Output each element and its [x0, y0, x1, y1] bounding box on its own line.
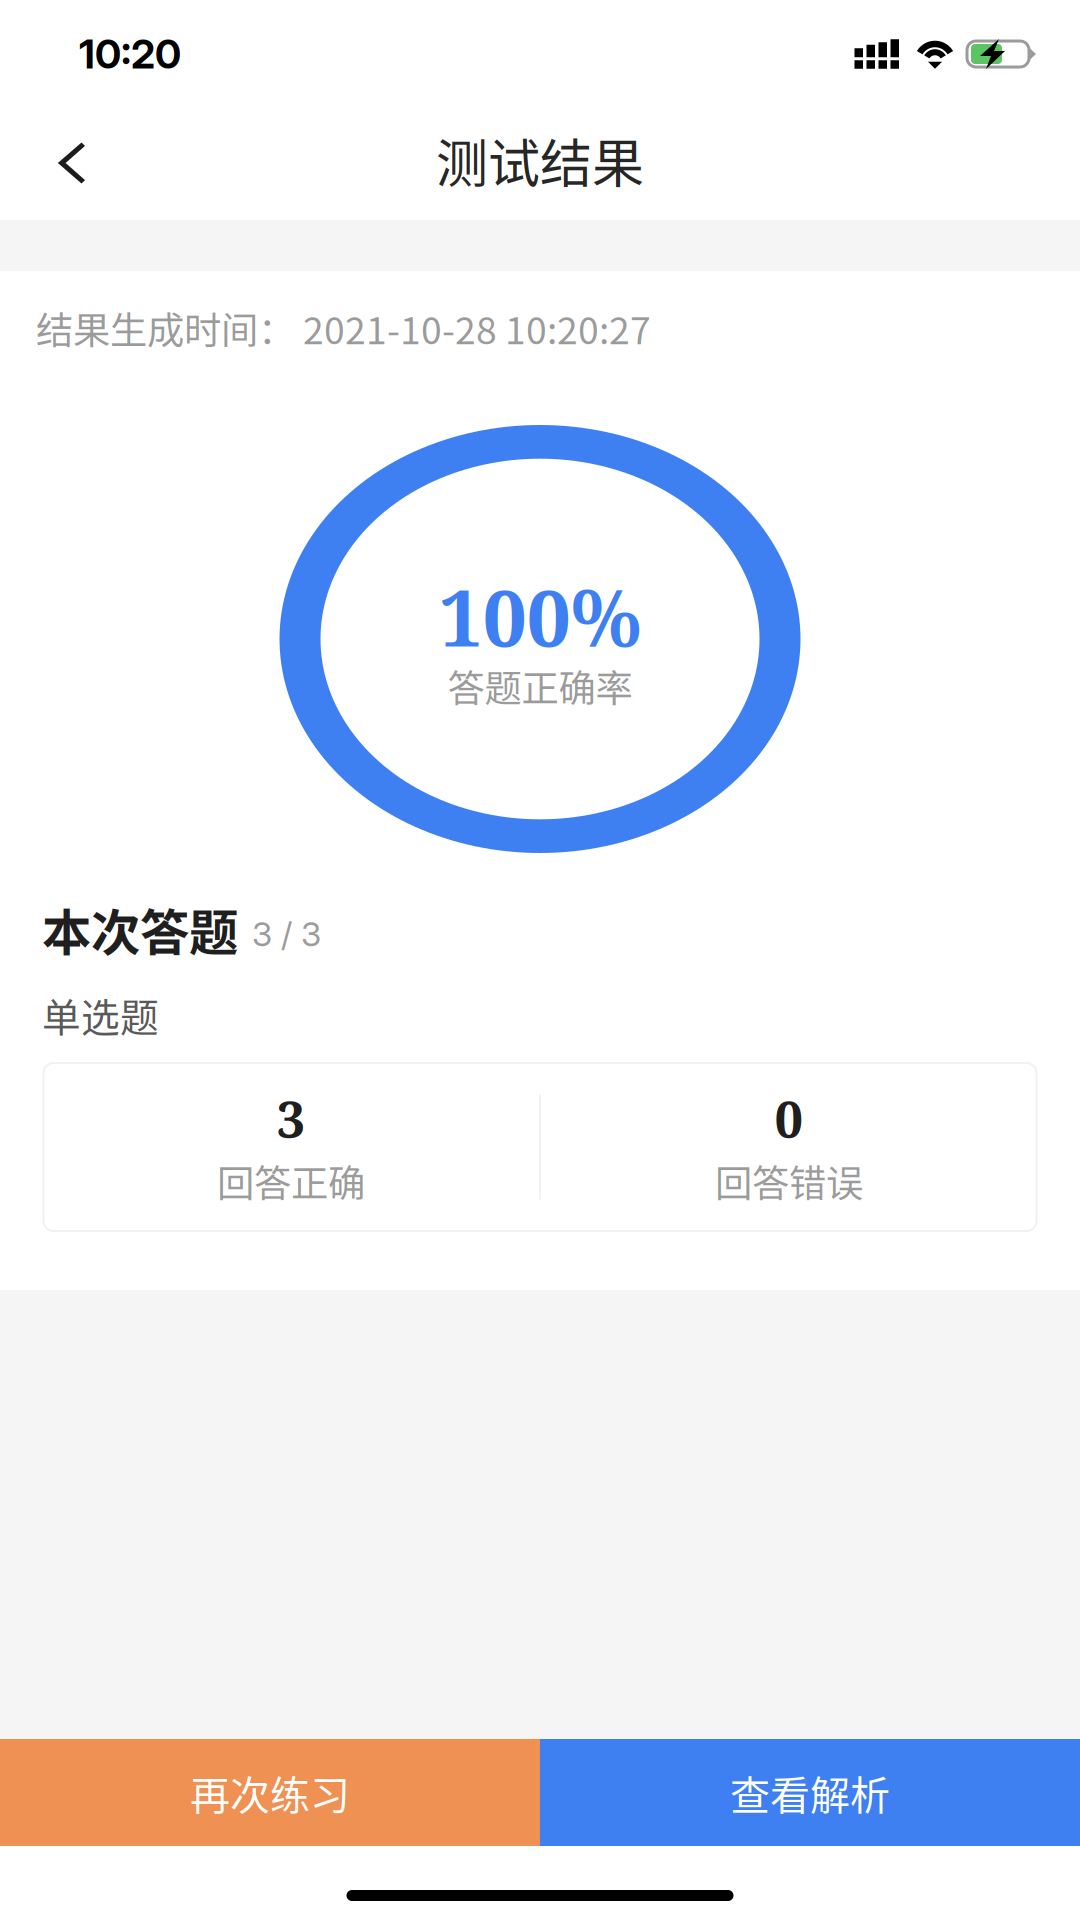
staticText: 查看解析: [730, 1763, 890, 1821]
staticText: 回答正确: [217, 1154, 365, 1208]
button[interactable]: Back: [11, 100, 131, 220]
staticText: 结果生成时间： 2021-10-28 10:20:27: [36, 301, 651, 355]
staticText: 本次答题: [42, 893, 238, 965]
staticText: 0: [774, 1083, 803, 1152]
staticText: 回答错误: [715, 1154, 863, 1208]
staticText: 10:20: [79, 30, 181, 78]
staticText: 3: [276, 1083, 305, 1152]
staticText: 答题正确率: [447, 659, 632, 713]
staticText: 单选题: [42, 987, 159, 1043]
staticText: 再次练习: [190, 1763, 350, 1821]
staticText: 测试结果: [436, 122, 644, 198]
button[interactable]: 查看解析: [540, 1739, 1080, 1846]
button[interactable]: 再次练习: [0, 1739, 540, 1846]
staticText: 100%: [438, 562, 641, 669]
staticText: 3 / 3: [252, 914, 321, 954]
